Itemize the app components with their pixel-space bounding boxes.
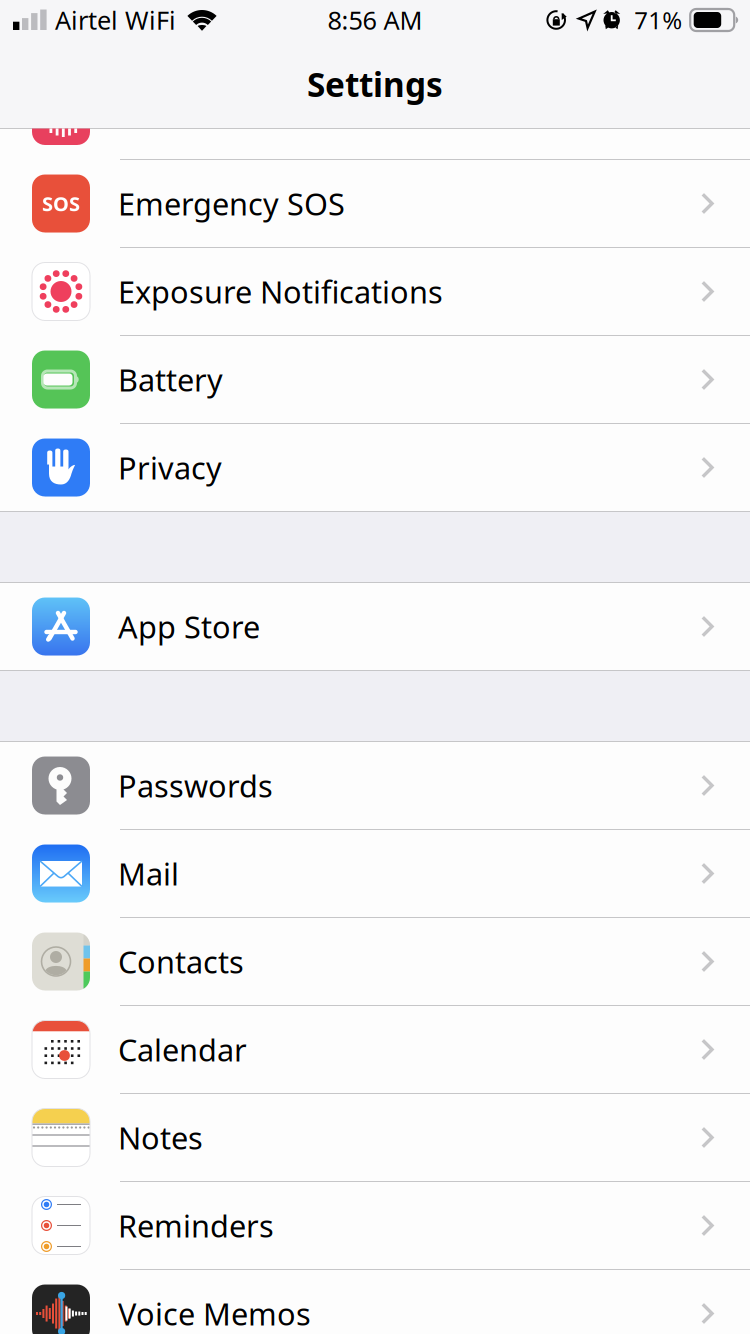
staticText: Settings: [307, 62, 443, 106]
staticText: Contacts: [118, 941, 244, 982]
button[interactable]: Exposure Notifications: [0, 248, 750, 336]
staticText: Battery: [118, 359, 223, 400]
button[interactable]: Notes: [0, 1094, 750, 1182]
staticText: Calendar: [118, 1029, 247, 1070]
button[interactable]: Battery: [0, 336, 750, 424]
button[interactable]: App Store: [0, 583, 750, 670]
staticText: SOS: [42, 190, 80, 217]
staticText: Emergency SOS: [118, 183, 345, 224]
staticText: Exposure Notifications: [118, 271, 443, 312]
staticText: Notes: [118, 1117, 203, 1158]
staticText: Airtel WiFi: [55, 3, 176, 37]
staticText: Mail: [118, 853, 179, 894]
button[interactable]: Contacts: [0, 918, 750, 1006]
button[interactable]: SOS: [0, 160, 750, 248]
button[interactable]: Passwords: [0, 742, 750, 830]
staticText: 8:56 AM: [327, 3, 422, 37]
button[interactable]: Reminders: [0, 1182, 750, 1270]
staticText: 71%: [634, 4, 682, 36]
button[interactable]: Voice Memos: [0, 1270, 750, 1334]
button[interactable]: Calendar: [0, 1006, 750, 1094]
button[interactable]: Privacy: [0, 424, 750, 511]
button[interactable]: Mail: [0, 830, 750, 918]
staticText: Voice Memos: [118, 1293, 311, 1334]
staticText: App Store: [118, 606, 260, 647]
staticText: Privacy: [118, 447, 222, 488]
staticText: Passwords: [118, 765, 273, 806]
staticText: Reminders: [118, 1205, 274, 1246]
